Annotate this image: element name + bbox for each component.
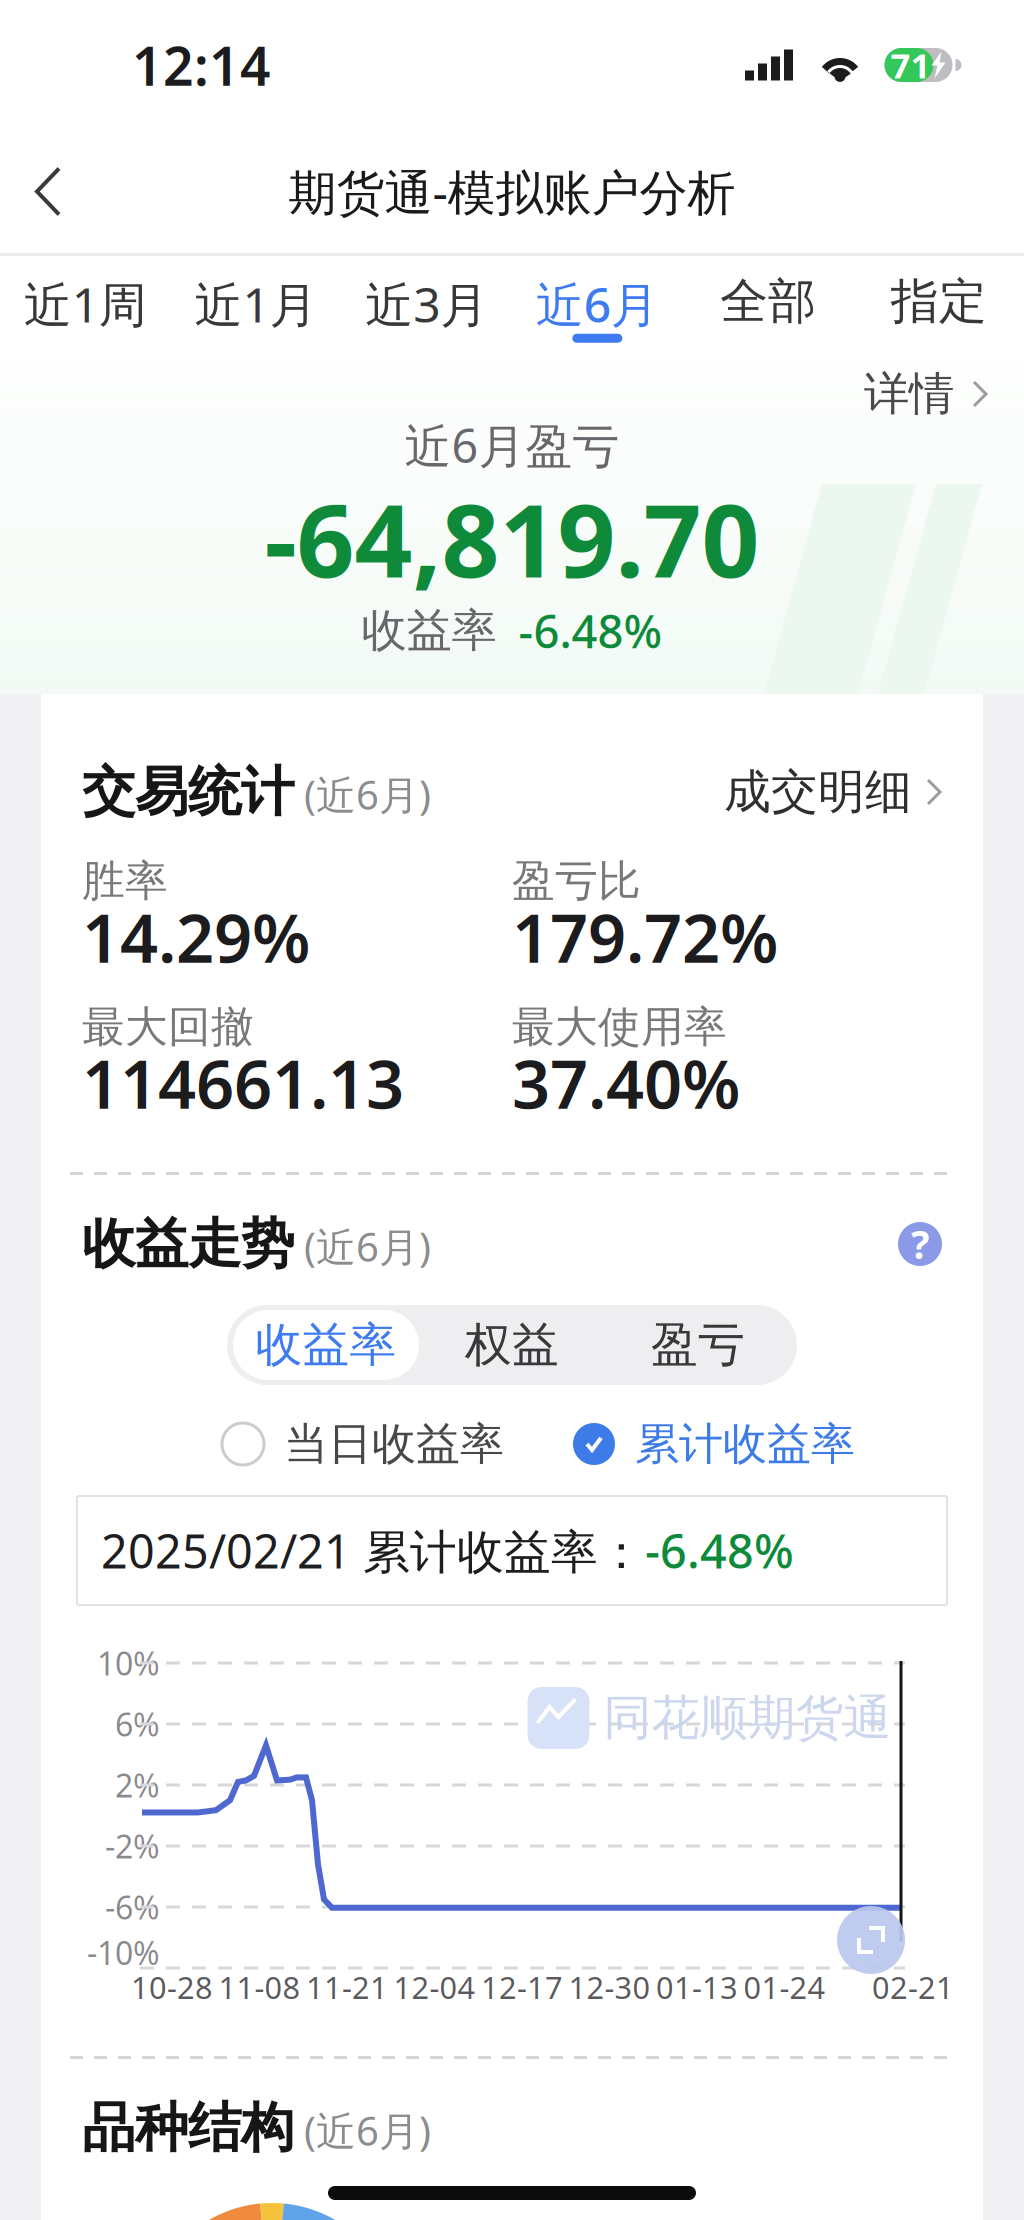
staticText: 当日收益率	[284, 1417, 504, 1471]
staticText: 01-13	[656, 1967, 738, 2007]
staticText: 权益	[465, 1316, 559, 1374]
staticText: 01-24	[743, 1967, 825, 2007]
staticText: 累计收益率	[635, 1417, 855, 1471]
staticText: 11-08	[218, 1967, 300, 2007]
staticText: 02-21	[872, 1967, 954, 2007]
staticText: 12-04	[393, 1967, 475, 2007]
staticText: 37.40%	[512, 1039, 740, 1127]
staticText: 179.72%	[512, 893, 778, 981]
staticText: 12-30	[568, 1967, 650, 2007]
staticText: 品种结构	[82, 2095, 294, 2161]
staticText: -6.48%	[518, 600, 662, 661]
staticText: 11-21	[306, 1967, 388, 2007]
staticText: -10%	[87, 1931, 160, 1974]
button[interactable]: Help	[898, 1218, 942, 1270]
staticText: 12:14	[132, 30, 271, 100]
staticText: -2%	[105, 1825, 160, 1867]
staticText: 盈亏比	[512, 855, 641, 907]
staticText: 胜率	[82, 855, 168, 907]
button[interactable]: 累计收益率	[573, 1417, 855, 1471]
staticText: 近3月	[365, 272, 488, 336]
button[interactable]: 指定	[853, 256, 1024, 362]
staticText: 71	[890, 42, 930, 88]
staticText: 期货通-模拟账户分析	[288, 160, 735, 223]
staticText: -64,819.70	[264, 471, 759, 606]
button[interactable]: Expand chart	[837, 1906, 905, 1974]
button[interactable]: 近3月	[341, 256, 512, 362]
staticText: 14.29%	[82, 893, 310, 981]
staticText: -6%	[105, 1886, 160, 1928]
staticText: 最大回撤	[82, 1001, 254, 1053]
button[interactable]: 权益	[419, 1310, 605, 1380]
staticText: 114661.13	[82, 1039, 404, 1127]
staticText: 2%	[115, 1764, 160, 1806]
staticText: 6%	[115, 1703, 160, 1745]
staticText: 交易统计	[82, 759, 294, 825]
staticText: 近1月	[194, 272, 317, 336]
button[interactable]: 盈亏	[605, 1310, 791, 1380]
staticText: 收益率	[255, 1316, 396, 1374]
button[interactable]: 详情	[828, 362, 1024, 426]
staticText: 近1周	[24, 272, 147, 336]
staticText: 详情	[864, 366, 954, 422]
staticText: (近6月)	[294, 2104, 431, 2157]
button[interactable]: 近1周	[0, 256, 171, 362]
staticText: (近6月)	[294, 1220, 431, 1273]
staticText: 近6月盈亏	[404, 414, 619, 476]
staticText: -6.48%	[645, 1519, 794, 1581]
staticText: 最大使用率	[512, 1001, 727, 1053]
staticText: 10%	[97, 1642, 160, 1684]
staticText: 同花顺期货通	[603, 1688, 891, 1747]
staticText: 2025/02/21 累计收益率：	[101, 1519, 645, 1581]
staticText: 收益率	[361, 603, 496, 658]
button[interactable]: 近1月	[171, 256, 341, 362]
staticText: 成交明细	[724, 763, 912, 821]
staticText: 盈亏	[651, 1316, 745, 1374]
button[interactable]: 全部	[683, 256, 853, 362]
staticText: 12-17	[481, 1967, 563, 2007]
staticText: 近6月	[536, 272, 659, 336]
staticText: ?	[911, 1218, 929, 1270]
button[interactable]: 成交明细	[724, 763, 942, 821]
staticText: 全部	[720, 272, 816, 331]
staticText: 收益走势	[82, 1211, 294, 1277]
staticText: 10-28	[131, 1967, 213, 2007]
button[interactable]: 收益率	[233, 1310, 419, 1380]
button[interactable]: 当日收益率	[222, 1417, 504, 1471]
button[interactable]: Back	[0, 140, 96, 242]
staticText: 指定	[891, 272, 987, 331]
button[interactable]: 近6月	[512, 256, 683, 362]
staticText: (近6月)	[294, 768, 431, 821]
